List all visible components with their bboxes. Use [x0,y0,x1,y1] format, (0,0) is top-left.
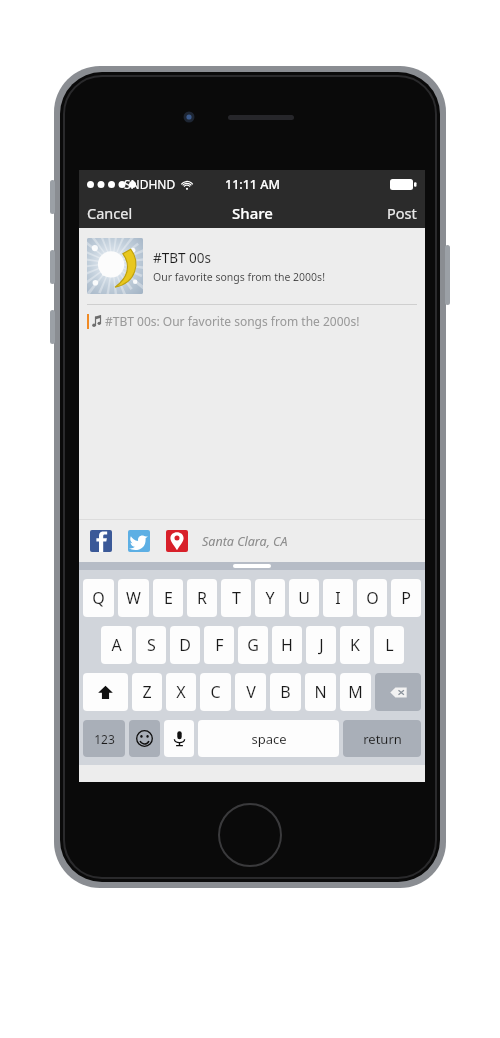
staticText: F [215,634,224,656]
button[interactable]: return [343,720,421,757]
button[interactable]: space [198,720,339,757]
button[interactable]: O [357,579,387,617]
button[interactable]: Shift [83,673,128,711]
button[interactable]: M [340,673,371,711]
staticText: C [210,681,221,703]
button[interactable]: Emoji [129,720,160,757]
staticText: 11:11 AM [225,176,280,193]
staticText: V [246,681,256,703]
button[interactable]: H [272,626,302,664]
staticText: Z [142,681,152,703]
button[interactable]: J [306,626,336,664]
staticText: L [385,634,394,656]
button[interactable]: Share on Facebook [90,530,112,552]
button[interactable]: D [170,626,200,664]
staticText: 123 [94,731,115,747]
staticText: SNDHND [124,176,176,192]
button[interactable]: Add location [166,530,188,552]
button[interactable]: Y [255,579,285,617]
staticText: X [176,681,186,703]
staticText: I [335,587,341,609]
button[interactable]: B [270,673,301,711]
button[interactable]: W [118,579,149,617]
button[interactable]: Share on Twitter [128,530,150,552]
button[interactable]: Q [83,579,114,617]
staticText: #TBT 00s: Our favorite songs from the 20… [105,313,360,329]
staticText: R [197,587,207,609]
staticText: Our favorite songs from the 2000s! [153,270,325,284]
staticText: T [232,587,241,609]
button[interactable]: C [200,673,231,711]
staticText: Y [265,587,275,609]
button[interactable]: I [323,579,353,617]
staticText: N [314,681,327,703]
staticText: W [126,587,141,609]
button[interactable]: E [153,579,183,617]
button[interactable]: K [340,626,370,664]
button[interactable]: Z [132,673,162,711]
staticText: B [280,681,291,703]
button[interactable]: X [166,673,196,711]
staticText: Post [387,203,417,223]
button[interactable]: Dictation [164,720,194,757]
staticText: E [164,587,173,609]
button[interactable]: Santa Clara, CA [202,533,288,550]
button[interactable]: Backspace [375,673,421,711]
staticText: #TBT 00s [153,249,211,267]
button[interactable]: A [101,626,132,664]
staticText: A [111,634,122,656]
staticText: K [350,634,360,656]
staticText: G [247,634,259,656]
staticText: O [366,587,379,609]
staticText: P [401,587,411,609]
staticText: J [319,634,324,656]
staticText: Share [232,203,273,223]
button[interactable]: U [289,579,319,617]
staticText: Q [92,587,105,609]
button[interactable]: P [391,579,421,617]
staticText: Cancel [87,203,133,223]
staticText: S [147,634,156,656]
button[interactable]: Post [379,199,425,227]
staticText: return [363,730,402,748]
staticText: M [348,681,363,703]
staticText: D [179,634,191,656]
button[interactable]: L [374,626,404,664]
button[interactable]: R [187,579,217,617]
button[interactable]: Cancel [79,199,141,227]
button[interactable]: S [136,626,166,664]
button[interactable]: T [221,579,251,617]
button[interactable]: G [238,626,268,664]
button[interactable]: F [204,626,234,664]
button[interactable]: 123 [83,720,125,757]
staticText: space [251,730,287,748]
button[interactable]: N [305,673,336,711]
staticText: H [281,634,293,656]
staticText: U [298,587,310,609]
button[interactable]: V [235,673,266,711]
